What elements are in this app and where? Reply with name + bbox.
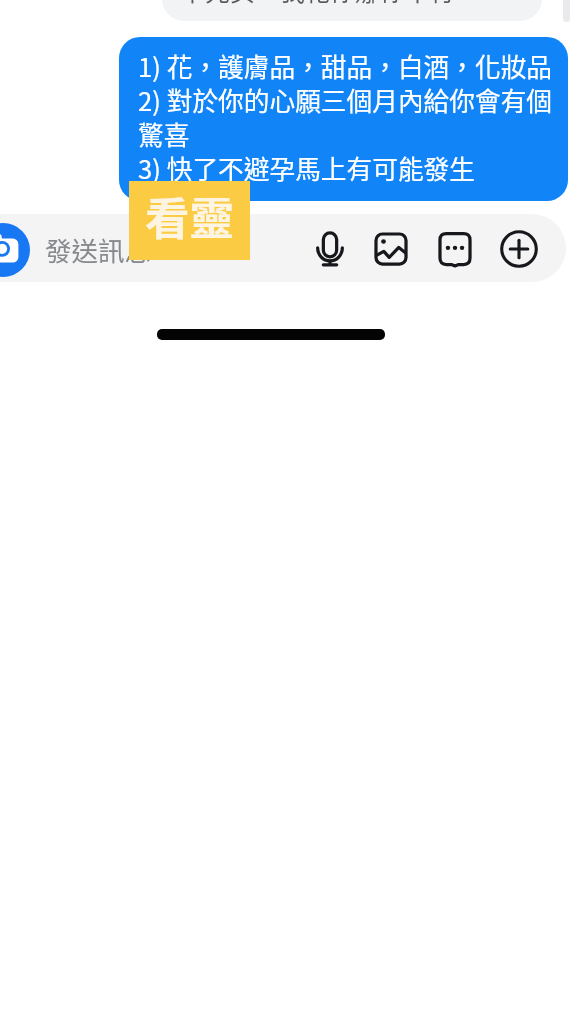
- staticText: 1) 花，護膚品，甜品，白酒，化妝品 2) 對於你的心願三個月內給你會有個 驚喜…: [138, 47, 553, 186]
- button[interactable]: Voice message: [307, 226, 353, 272]
- button[interactable]: Camera: [0, 223, 30, 277]
- staticText: 千先买，我花你娜你不行⋯: [180, 0, 481, 8]
- button[interactable]: Stickers: [432, 226, 478, 272]
- staticText: 看靈: [145, 183, 235, 247]
- button[interactable]: 千先买，我花你娜你不行⋯: [162, 0, 542, 21]
- button[interactable]: Photos: [368, 226, 414, 272]
- button[interactable]: More: [496, 226, 542, 272]
- button[interactable]: 1) 花，護膚品，甜品，白酒，化妝品 2) 對於你的心願三個月內給你會有個 驚喜…: [119, 37, 568, 201]
- staticText: 發送訊息: [45, 230, 151, 268]
